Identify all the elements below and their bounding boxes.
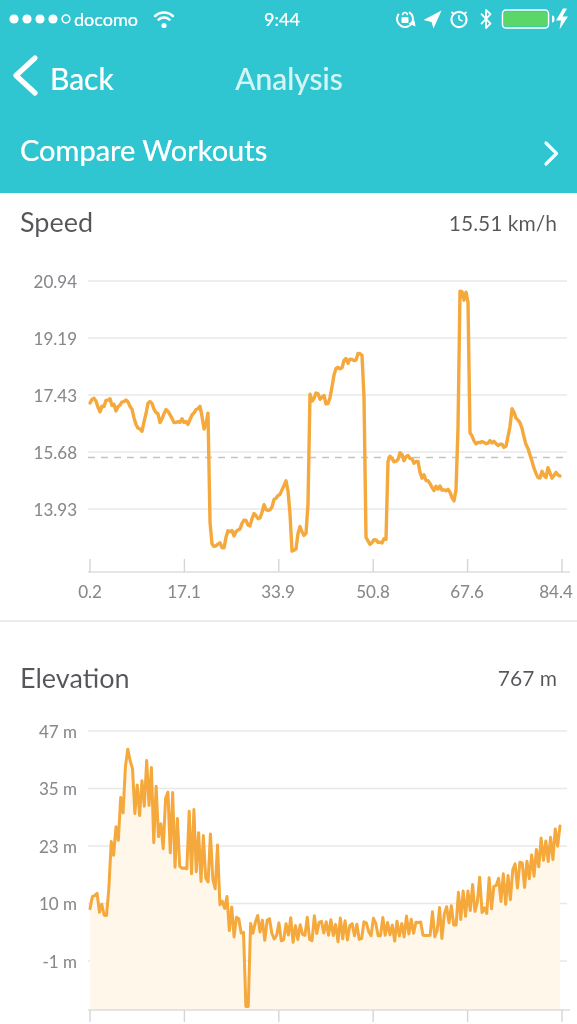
staticText: 15.68 — [33, 442, 77, 462]
staticText: 17.1 — [167, 581, 201, 601]
staticText: 0.2 — [78, 581, 102, 601]
staticText: 20.94 — [33, 271, 77, 291]
staticText: Analysis — [235, 60, 343, 96]
staticText: 17.43 — [33, 385, 77, 405]
staticText: 33.9 — [261, 581, 295, 601]
staticText: 84.4 — [539, 581, 573, 601]
staticText: 767 m — [497, 665, 557, 690]
staticText: 10 m — [38, 893, 77, 913]
staticText: 35 m — [38, 778, 77, 798]
staticText: 13.93 — [33, 499, 77, 519]
button[interactable] — [4, 52, 124, 100]
staticText: Compare Workouts — [20, 132, 268, 167]
staticText: docomo — [74, 8, 138, 30]
staticText: 47 m — [38, 721, 77, 741]
button[interactable] — [0, 113, 577, 193]
staticText: -1 m — [42, 951, 77, 971]
staticText: 15.51 km/h — [448, 210, 557, 235]
staticText: 67.6 — [450, 581, 484, 601]
staticText: Back — [50, 60, 114, 96]
staticText: 19.19 — [33, 328, 77, 348]
staticText: 50.8 — [356, 581, 390, 601]
staticText: 9:44 — [264, 8, 300, 30]
staticText: 23 m — [38, 836, 77, 856]
staticText: Elevation — [20, 661, 130, 693]
staticText: Speed — [20, 205, 94, 237]
